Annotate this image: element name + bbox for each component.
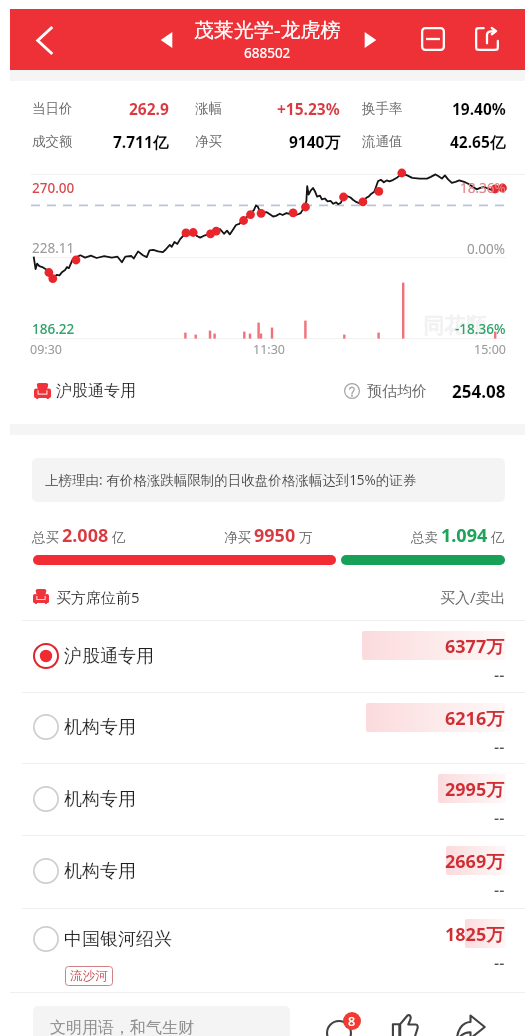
button[interactable]: Back	[19, 15, 69, 65]
staticText: 2995万	[445, 777, 505, 802]
staticText: 9950	[254, 523, 296, 548]
button[interactable]: 买方席位前5	[0, 580, 525, 614]
staticText: 228.11	[32, 239, 75, 257]
button[interactable]: 中国银河绍兴	[0, 908, 525, 993]
staticText: --	[494, 879, 505, 901]
staticText: 沪股通专用	[64, 645, 154, 668]
staticText: 沪股通专用	[56, 381, 136, 401]
staticText: 1.094	[441, 523, 488, 548]
staticText: 机构专用	[64, 716, 136, 739]
staticText: 6216万	[445, 706, 505, 731]
staticText: 当日价	[32, 100, 73, 117]
staticText: 流通值	[362, 133, 403, 150]
button[interactable]: 机构专用	[0, 692, 525, 763]
staticText: 15:00	[474, 341, 506, 358]
button[interactable]: 机构专用	[0, 835, 525, 908]
staticText: 茂莱光学-龙虎榜	[194, 16, 341, 42]
staticText: 机构专用	[64, 788, 136, 811]
staticText: 亿	[491, 529, 505, 546]
staticText: 预估均价	[367, 382, 427, 401]
staticText: 254.08	[452, 380, 506, 403]
staticText: 机构专用	[64, 860, 136, 883]
button[interactable]: 文明用语，和气生财	[33, 1006, 290, 1036]
staticText: 11:30	[253, 341, 285, 358]
button[interactable]: Like	[389, 1013, 417, 1036]
staticText: 上榜理由: 有价格涨跌幅限制的日收盘价格涨幅达到15%的证券	[45, 471, 417, 489]
button[interactable]: Share	[455, 1013, 486, 1036]
staticText: --	[494, 807, 505, 829]
staticText: 总卖	[411, 529, 438, 546]
staticText: 1825万	[445, 922, 505, 947]
staticText: 42.65亿	[450, 131, 506, 152]
staticText: 涨幅	[195, 100, 222, 117]
staticText: 流沙河	[70, 968, 108, 984]
button[interactable]: 沪股通专用	[0, 620, 525, 692]
staticText: 0.00%	[467, 240, 506, 258]
staticText: 6377万	[445, 634, 505, 659]
button[interactable]: Minimise	[410, 16, 456, 62]
staticText: 成交额	[32, 133, 73, 150]
staticText: 净买	[195, 133, 222, 150]
button[interactable]: 沪股通专用	[10, 374, 525, 408]
button[interactable]: 上榜理由: 有价格涨跌幅限制的日收盘价格涨幅达到15%的证券	[32, 458, 505, 502]
button[interactable]: Comments	[313, 1001, 365, 1036]
staticText: 2.008	[62, 523, 109, 548]
staticText: 688502	[244, 44, 291, 62]
staticText: +15.23%	[277, 98, 340, 119]
staticText: 262.9	[129, 98, 169, 119]
staticText: 亿	[112, 529, 126, 546]
staticText: 18.36%	[460, 179, 506, 197]
staticText: -18.36%	[455, 320, 506, 338]
staticText: 270.00	[32, 179, 75, 197]
staticText: 09:30	[30, 341, 62, 358]
staticText: 186.22	[32, 320, 75, 338]
staticText: 2669万	[445, 849, 505, 874]
staticText: 文明用语，和气生财	[50, 1018, 194, 1036]
staticText: 买方席位前5	[56, 587, 140, 607]
staticText: --	[494, 664, 505, 686]
staticText: --	[494, 736, 505, 758]
staticText: 总买	[32, 529, 59, 546]
staticText: 买入/卖出	[440, 587, 506, 607]
staticText: 7.711亿	[113, 131, 169, 152]
staticText: --	[494, 952, 505, 974]
staticText: 8	[348, 1013, 356, 1030]
button[interactable]: Share	[464, 16, 510, 62]
staticText: 换手率	[362, 100, 403, 117]
staticText: 9140万	[289, 131, 340, 152]
staticText: 19.40%	[452, 98, 506, 119]
staticText: 净买	[224, 529, 251, 546]
staticText: 中国银河绍兴	[64, 928, 172, 951]
button[interactable]: 机构专用	[0, 763, 525, 835]
staticText: 万	[299, 529, 313, 546]
staticText: 同花顺	[423, 313, 486, 339]
